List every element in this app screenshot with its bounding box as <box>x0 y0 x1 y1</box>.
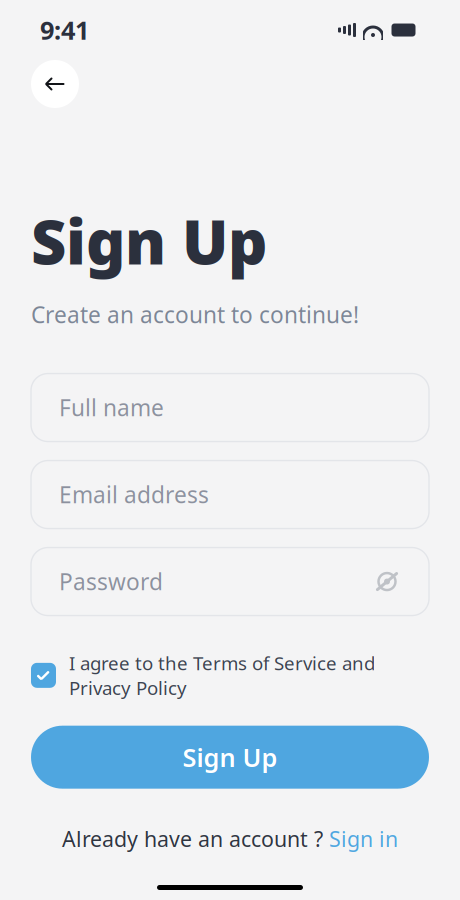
staticText: 9:41 <box>40 13 89 47</box>
button[interactable]: Back <box>31 60 79 108</box>
staticText: Password <box>59 566 163 597</box>
staticText: Email address <box>59 479 209 510</box>
button[interactable]: I agree to the Terms of Service and Priv… <box>0 650 460 700</box>
staticText: Sign in <box>329 825 398 853</box>
button[interactable]: Sign Up <box>31 726 429 789</box>
staticText: Already have an account ? <box>62 825 329 853</box>
staticText: Sign Up <box>182 740 277 774</box>
button[interactable]: Sign in <box>329 825 398 853</box>
staticText: Sign Up <box>31 200 267 281</box>
staticText: Create an account to continue! <box>31 299 359 329</box>
staticText: Full name <box>59 392 164 423</box>
staticText: I agree to the Terms of Service and Priv… <box>69 650 375 700</box>
